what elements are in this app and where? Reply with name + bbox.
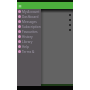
button[interactable]: Open navigation drawer <box>18 4 22 8</box>
button[interactable]: More options <box>17 22 73 27</box>
staticText: My Account <box>22 10 40 14</box>
staticText: Library <box>22 40 33 44</box>
button[interactable]: Help <box>17 44 41 49</box>
button[interactable]: More options <box>17 17 73 22</box>
staticText: Dashboard <box>22 15 39 19</box>
button[interactable]: Library <box>17 39 41 44</box>
button[interactable]: More options <box>17 27 73 32</box>
button[interactable]: My Account <box>17 9 41 14</box>
button[interactable]: Messages <box>17 19 41 24</box>
button[interactable]: More options <box>17 12 73 17</box>
staticText: Subscriptions <box>22 25 41 29</box>
button[interactable]: Dashboard <box>17 14 41 19</box>
button[interactable]: Favourites <box>17 29 41 34</box>
button[interactable]: Terms & Privacy <box>17 49 41 54</box>
staticText: Favourites <box>22 30 38 34</box>
button[interactable]: History <box>17 34 41 39</box>
staticText: Help <box>22 45 29 49</box>
button[interactable]: Subscriptions <box>17 24 41 29</box>
staticText: Messages <box>22 20 37 24</box>
staticText: Terms & Privacy <box>22 50 41 54</box>
staticText: History <box>22 35 33 39</box>
